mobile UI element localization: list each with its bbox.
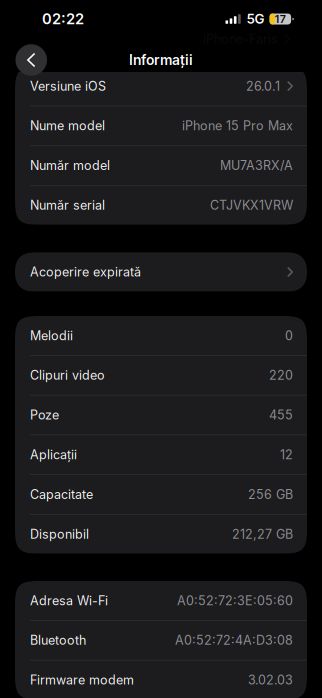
button[interactable]: Adresa Wi-Fi: [15, 581, 307, 620]
staticText: Informații: [129, 52, 193, 68]
staticText: Firmware modem: [30, 672, 134, 688]
button[interactable]: Poze: [15, 395, 307, 435]
staticText: Bluetooth: [30, 633, 86, 648]
staticText: iPhone 15 Pro Max: [182, 118, 293, 133]
staticText: Nume model: [30, 118, 105, 133]
staticText: Număr model: [30, 158, 110, 173]
button[interactable]: Capacitate: [15, 475, 307, 514]
staticText: 220: [269, 368, 293, 383]
staticText: A0:52:72:3E:05:60: [177, 593, 293, 608]
button[interactable]: Număr model: [15, 146, 307, 185]
staticText: 12: [280, 447, 293, 462]
staticText: 02:22: [42, 10, 84, 28]
staticText: Clipuri video: [30, 368, 105, 383]
staticText: Adresa Wi-Fi: [30, 593, 108, 608]
staticText: MU7A3RX/A: [220, 158, 293, 173]
staticText: Acoperire expirată: [30, 264, 141, 280]
staticText: Aplicații: [30, 447, 77, 462]
staticText: 0: [285, 328, 293, 343]
staticText: 5G: [247, 11, 265, 27]
button[interactable]: Disponibil: [15, 514, 307, 554]
staticText: 455: [269, 407, 293, 423]
staticText: iPhone-Faris: [203, 31, 278, 47]
staticText: 26.0.1: [246, 78, 280, 94]
staticText: Poze: [30, 407, 59, 423]
button[interactable]: Număr serial: [15, 186, 307, 225]
button[interactable]: Melodii: [15, 316, 307, 355]
staticText: 256 GB: [248, 487, 293, 502]
button[interactable]: Back: [15, 44, 47, 76]
staticText: 17: [275, 12, 286, 25]
staticText: Versiune iOS: [30, 78, 106, 94]
staticText: 3.02.03: [248, 672, 293, 688]
staticText: Melodii: [30, 328, 73, 343]
staticText: A0:52:72:4A:D3:08: [175, 633, 293, 648]
staticText: 212,27 GB: [232, 526, 293, 542]
staticText: CTJVKX1VRW: [210, 198, 293, 213]
button[interactable]: Acoperire expirată: [15, 252, 307, 292]
button[interactable]: Clipuri video: [15, 356, 307, 395]
button[interactable]: Versiune iOS: [15, 66, 307, 106]
button[interactable]: Nume model: [15, 106, 307, 145]
staticText: Disponibil: [30, 526, 89, 542]
button[interactable]: Firmware modem: [15, 660, 307, 698]
staticText: Număr serial: [30, 198, 105, 213]
staticText: Capacitate: [30, 487, 93, 502]
button[interactable]: Aplicații: [15, 435, 307, 474]
button[interactable]: Bluetooth: [15, 621, 307, 660]
